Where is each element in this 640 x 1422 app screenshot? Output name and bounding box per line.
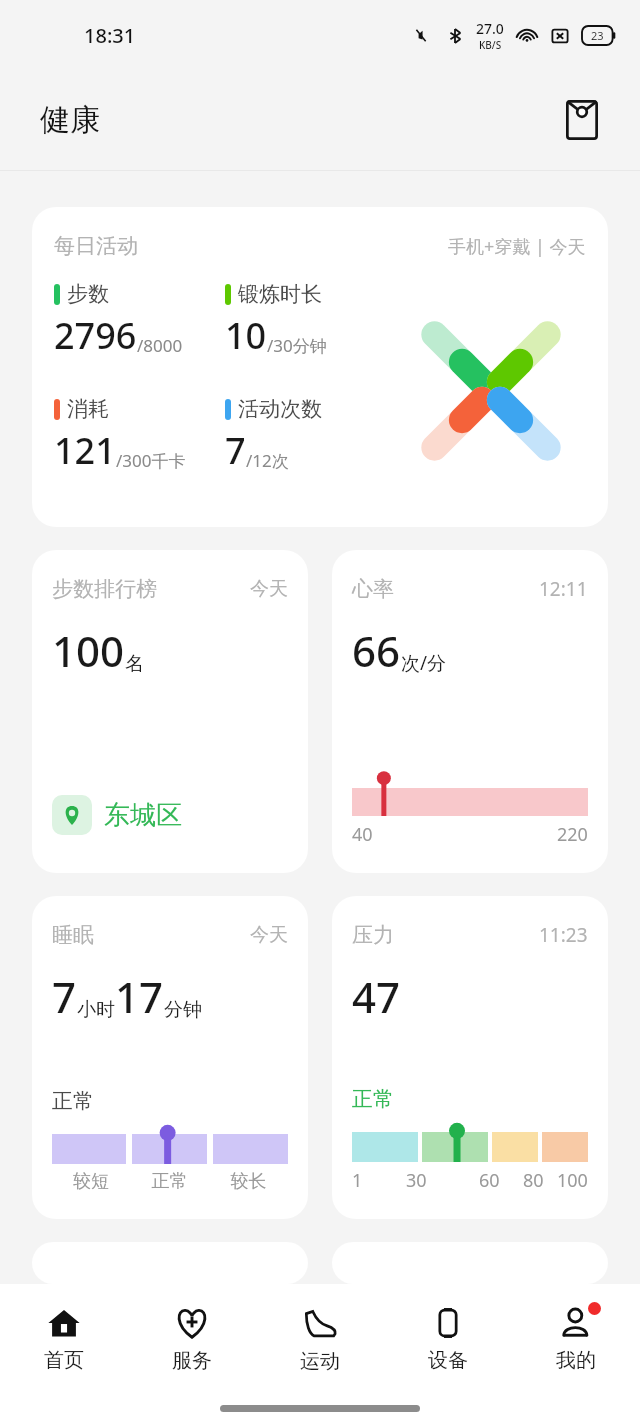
button[interactable]: 服务 bbox=[128, 1284, 256, 1394]
staticText: 100 bbox=[557, 1168, 588, 1193]
button[interactable]: Red packet bbox=[556, 94, 608, 146]
staticText: 80 bbox=[523, 1168, 544, 1193]
staticText: 首页 bbox=[44, 1348, 84, 1373]
staticText: 220 bbox=[557, 822, 588, 847]
staticText: 今天 bbox=[250, 577, 288, 601]
staticText: 健康 bbox=[40, 101, 100, 139]
staticText: 今天 bbox=[250, 923, 288, 947]
staticText: 23 bbox=[591, 28, 604, 43]
staticText: 服务 bbox=[172, 1348, 212, 1373]
button[interactable]: 首页 bbox=[0, 1284, 128, 1394]
button[interactable]: 心率 bbox=[332, 550, 608, 873]
staticText: 100 bbox=[52, 622, 125, 679]
staticText: 17 bbox=[115, 968, 164, 1025]
staticText: 40 bbox=[352, 822, 373, 847]
staticText: 7 bbox=[52, 968, 77, 1025]
staticText: /12次 bbox=[246, 449, 289, 472]
staticText: 正常 bbox=[352, 1086, 394, 1112]
staticText: 小时 bbox=[77, 998, 115, 1022]
staticText: 47 bbox=[352, 968, 401, 1025]
staticText: 12:11 bbox=[539, 576, 588, 602]
staticText: 步数 bbox=[67, 281, 109, 307]
button[interactable]: 设备 bbox=[384, 1284, 512, 1394]
staticText: 121 bbox=[54, 426, 116, 475]
staticText: 心率 bbox=[352, 576, 394, 602]
staticText: 消耗 bbox=[67, 396, 109, 422]
staticText: 10 bbox=[225, 311, 267, 360]
staticText: 每日活动 bbox=[54, 233, 138, 259]
staticText: 正常 bbox=[52, 1088, 94, 1114]
staticText: 睡眠 bbox=[52, 922, 94, 948]
button[interactable]: 我的 bbox=[512, 1284, 640, 1394]
staticText: 7 bbox=[225, 426, 246, 475]
staticText: 锻炼时长 bbox=[238, 281, 322, 307]
staticText: 较短 bbox=[52, 1170, 130, 1193]
staticText: 60 bbox=[479, 1168, 500, 1193]
button[interactable]: 运动 bbox=[256, 1284, 384, 1394]
button[interactable]: 压力 bbox=[332, 896, 608, 1219]
staticText: 活动次数 bbox=[238, 396, 322, 422]
staticText: /8000 bbox=[137, 334, 183, 357]
staticText: 66 bbox=[352, 622, 401, 679]
staticText: 正常 bbox=[130, 1170, 209, 1193]
staticText: 1 bbox=[352, 1168, 363, 1193]
staticText: 30 bbox=[406, 1168, 427, 1193]
staticText: 设备 bbox=[428, 1348, 468, 1373]
staticText: 东城区 bbox=[104, 799, 182, 832]
button[interactable]: 每日活动 bbox=[32, 207, 608, 527]
staticText: 11:23 bbox=[539, 922, 588, 948]
staticText: /300千卡 bbox=[116, 449, 186, 472]
staticText: 18:31 bbox=[84, 22, 136, 49]
staticText: 压力 bbox=[352, 922, 394, 948]
staticText: 步数排行榜 bbox=[52, 576, 157, 602]
staticText: KB/S bbox=[479, 38, 502, 52]
staticText: 名 bbox=[125, 652, 144, 676]
staticText: 次/分 bbox=[401, 650, 447, 676]
staticText: 分钟 bbox=[164, 998, 202, 1022]
staticText: 手机+穿戴 | 今天 bbox=[448, 234, 586, 259]
staticText: 27.0 bbox=[476, 19, 504, 38]
staticText: 运动 bbox=[300, 1349, 340, 1374]
staticText: 2796 bbox=[54, 311, 137, 360]
staticText: 我的 bbox=[556, 1348, 596, 1373]
staticText: /30分钟 bbox=[267, 334, 327, 357]
button[interactable]: 睡眠 bbox=[32, 896, 308, 1219]
button[interactable]: 步数排行榜 bbox=[32, 550, 308, 873]
staticText: 较长 bbox=[209, 1170, 288, 1193]
